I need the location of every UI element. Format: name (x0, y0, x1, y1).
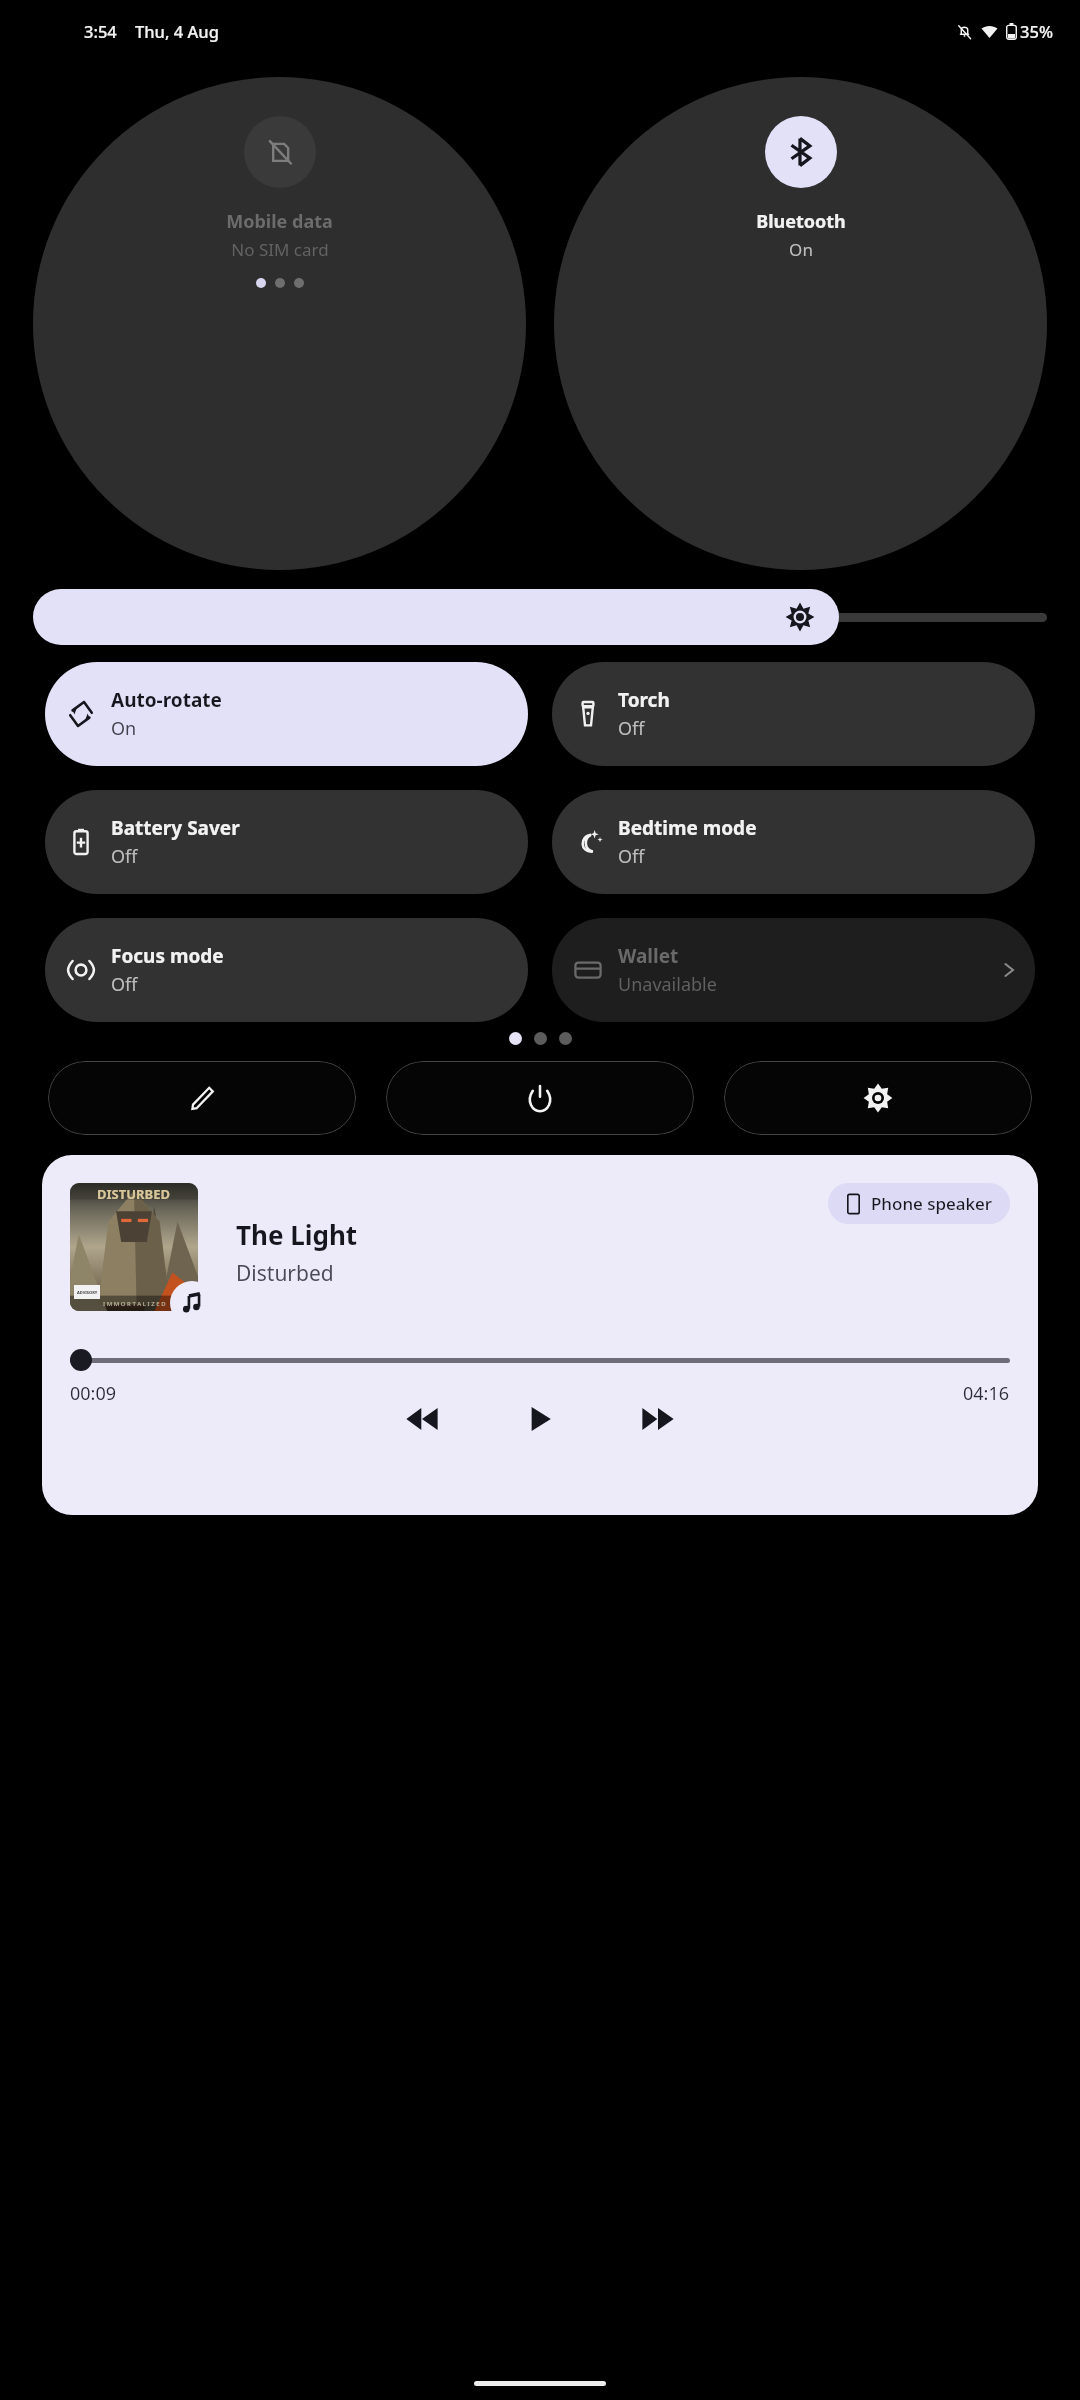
button[interactable]: Previous (400, 1397, 444, 1441)
button[interactable]: Phone speaker (828, 1183, 1010, 1224)
staticText: Off (111, 844, 138, 869)
staticText: 35% (1020, 20, 1053, 42)
button[interactable]: Battery Saver (45, 790, 528, 894)
staticText: Mobile data (226, 209, 333, 234)
button[interactable]: Mobile data (33, 77, 526, 570)
button[interactable]: Next (636, 1397, 680, 1441)
staticText: 00:09 (70, 1381, 117, 1406)
button[interactable]: Focus mode (45, 918, 528, 1022)
staticText: Torch (618, 687, 670, 713)
staticText: Wallet (618, 943, 679, 969)
button[interactable]: Bedtime mode (552, 790, 1035, 894)
staticText: Disturbed (236, 1259, 334, 1288)
button[interactable]: Wallet (552, 918, 1035, 1022)
staticText: 04:16 (963, 1381, 1010, 1406)
staticText: Phone speaker (871, 1192, 992, 1215)
staticText: Off (618, 716, 645, 741)
staticText: On (111, 716, 137, 741)
staticText: Battery Saver (111, 815, 240, 841)
staticText: Bluetooth (756, 209, 846, 234)
button[interactable]: Torch (552, 662, 1035, 766)
button[interactable]: Brightness (33, 589, 839, 645)
button[interactable]: Phone speaker (42, 1155, 1038, 1515)
staticText: Unavailable (618, 972, 717, 997)
button[interactable]: Settings (724, 1061, 1032, 1135)
button[interactable]: Edit tiles (48, 1061, 356, 1135)
button[interactable]: Power (386, 1061, 694, 1135)
staticText: Bedtime mode (618, 815, 757, 841)
button[interactable]: Auto-rotate (45, 662, 528, 766)
button[interactable]: Play (518, 1397, 562, 1441)
staticText: Auto-rotate (111, 687, 222, 713)
staticText: Thu, 4 Aug (135, 20, 219, 42)
staticText: I M M O R T A L I Z E D (103, 1300, 166, 1308)
staticText: The Light (236, 1217, 358, 1252)
staticText: DISTURBED (97, 1185, 171, 1203)
staticText: 3:54 (84, 20, 117, 42)
staticText: On (789, 238, 813, 261)
staticText: Off (111, 972, 138, 997)
button[interactable]: Bluetooth (554, 77, 1047, 570)
staticText: Off (618, 844, 645, 869)
staticText: Focus mode (111, 943, 224, 969)
staticText: No SIM card (231, 238, 329, 261)
staticText: ADVISORY (77, 1290, 98, 1295)
